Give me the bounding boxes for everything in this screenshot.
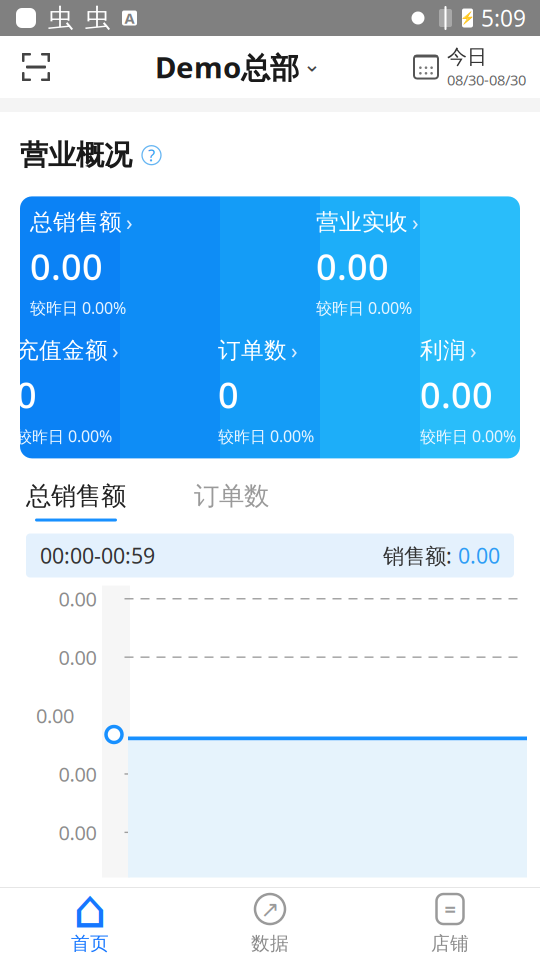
button[interactable]: ⌂ xyxy=(0,888,180,960)
staticText: ⌄ xyxy=(303,52,321,76)
staticText: 0.00 xyxy=(420,371,493,418)
staticText: Demo总部 xyxy=(155,47,299,86)
button[interactable]: 利润 xyxy=(384,336,540,447)
staticText: 订单数 xyxy=(194,480,269,511)
staticText: › xyxy=(126,208,133,236)
button[interactable]: 订单数 xyxy=(136,474,279,521)
staticText: 0.00 xyxy=(458,541,500,570)
staticText: 00:00-00:59 xyxy=(40,541,155,570)
staticText: 总销售额 xyxy=(30,208,122,236)
staticText: 首页 xyxy=(71,932,109,955)
staticText: 营业实收 xyxy=(316,208,408,236)
staticText: ? xyxy=(148,145,155,166)
button[interactable]: 订单数 xyxy=(182,336,384,447)
staticText: › xyxy=(291,336,298,365)
staticText: 利润 xyxy=(420,337,466,364)
staticText: 较昨日 0.00% xyxy=(218,425,314,447)
staticText: 5:09 xyxy=(481,3,526,33)
staticText: ⌂ xyxy=(73,879,107,939)
button[interactable]: 充值金额 xyxy=(0,336,182,447)
staticText: 0.00 xyxy=(58,585,96,612)
staticText: 0.00 xyxy=(58,761,96,787)
staticText: 店铺 xyxy=(431,932,469,955)
staticText: › xyxy=(412,208,419,236)
staticText: 较昨日 0.00% xyxy=(30,297,126,318)
button[interactable]: 扫一扫 xyxy=(8,39,64,95)
button[interactable]: = xyxy=(360,888,540,960)
staticText: ⚡ xyxy=(460,11,475,25)
staticText: 数据 xyxy=(251,932,289,955)
staticText: 充值金额 xyxy=(16,337,108,364)
button[interactable]: 今日 xyxy=(412,36,540,97)
staticText: 0.00 xyxy=(316,242,389,290)
staticText: 虫 xyxy=(85,2,110,33)
button[interactable]: Demo总部 xyxy=(149,39,327,94)
staticText: 较昨日 0.00% xyxy=(16,425,112,447)
staticText: 今日 xyxy=(447,44,487,69)
staticText: › xyxy=(470,336,477,365)
staticText: 0 xyxy=(218,371,239,418)
button[interactable]: 总销售额 xyxy=(16,474,136,521)
button[interactable]: 营业实收 xyxy=(280,208,540,318)
staticText: 订单数 xyxy=(218,337,287,364)
staticText: 08/30-08/30 xyxy=(447,70,526,89)
staticText: 0.00 xyxy=(58,819,96,846)
button[interactable]: 帮助 xyxy=(142,146,161,165)
button[interactable]: ↗ xyxy=(180,888,360,960)
staticText: 较昨日 0.00% xyxy=(316,297,412,318)
staticText: 较昨日 0.00% xyxy=(420,425,516,447)
staticText: ↗ xyxy=(260,896,279,922)
button[interactable]: 总销售额 xyxy=(0,208,280,318)
staticText: 销售额: xyxy=(383,541,458,570)
staticText: › xyxy=(112,336,119,365)
staticText: 0 xyxy=(16,371,37,418)
staticText: 总销售额 xyxy=(26,480,126,511)
staticText: 虫 xyxy=(48,2,73,33)
staticText: 0.00 xyxy=(36,702,74,729)
staticText: 0.00 xyxy=(58,644,96,670)
staticText: 0.00 xyxy=(30,242,103,290)
staticText: 营业概况 xyxy=(20,138,132,172)
staticText: = xyxy=(444,896,455,922)
staticText: A xyxy=(124,8,134,28)
